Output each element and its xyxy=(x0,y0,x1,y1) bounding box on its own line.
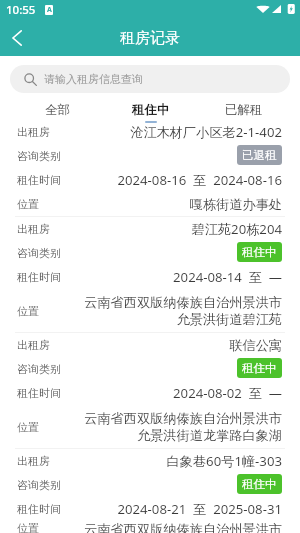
staticText: 出租房 xyxy=(17,125,50,139)
staticText: 10:55 xyxy=(6,2,36,18)
staticText: 咨询类别 xyxy=(17,246,61,260)
staticText: 云南省西双版纳傣族自治州景洪市 xyxy=(84,294,282,311)
staticText: 位置 xyxy=(17,304,39,318)
button[interactable]: 出租房 xyxy=(0,449,300,533)
staticText: 租住中 xyxy=(242,361,277,375)
staticText: 位置 xyxy=(17,197,39,211)
button[interactable]: 出租房 xyxy=(0,217,300,333)
staticText: 已退租 xyxy=(242,148,277,162)
button[interactable]: 已解租 xyxy=(197,101,290,120)
staticText: 咨询类别 xyxy=(17,478,61,492)
staticText: 2024-08-16 至 2024-08-16 xyxy=(117,171,282,189)
staticText: 咨询类别 xyxy=(17,149,61,163)
staticText: 嘎栋街道办事处 xyxy=(189,196,282,213)
staticText: 已解租 xyxy=(225,102,263,118)
staticText: 租住中 xyxy=(132,102,170,118)
staticText: 租住时间 xyxy=(17,270,61,284)
staticText: 全部 xyxy=(45,102,70,118)
staticText: 允景洪街道龙掌路白象湖 xyxy=(136,427,282,444)
staticText: 2024-08-21 至 2025-08-31 xyxy=(117,500,282,518)
staticText: 位置 xyxy=(17,521,39,533)
staticText: 租住中 xyxy=(242,245,277,259)
staticText: 租住中 xyxy=(242,477,277,491)
staticText: 租住时间 xyxy=(17,173,61,187)
staticText: 请输入租房信息查询 xyxy=(44,72,143,86)
staticText: 咨询类别 xyxy=(17,362,61,376)
staticText: 租住时间 xyxy=(17,502,61,516)
button[interactable]: 出租房 xyxy=(0,333,300,449)
button[interactable]: 全部 xyxy=(10,101,104,120)
button[interactable]: Back xyxy=(1,22,33,54)
staticText: 2024-08-02 至 — xyxy=(173,384,282,402)
staticText: 白象巷60号1幢-303 xyxy=(166,452,282,470)
staticText: 沧江木材厂小区老2-1-402 xyxy=(130,123,282,141)
staticText: 2024-08-14 至 — xyxy=(173,268,282,286)
button[interactable]: 出租房 xyxy=(0,120,300,217)
staticText: 出租房 xyxy=(17,338,50,352)
staticText: 出租房 xyxy=(17,222,50,236)
staticText: 位置 xyxy=(17,420,39,434)
staticText: 联信公寓 xyxy=(229,337,282,354)
staticText: 租住时间 xyxy=(17,386,61,400)
staticText: 允景洪街道碧江苑 xyxy=(176,311,282,328)
staticText: 云南省西双版纳傣族自治州景洪市 xyxy=(84,521,282,533)
staticText: 碧江苑20栋204 xyxy=(191,220,282,238)
staticText: A xyxy=(47,5,52,15)
staticText: 出租房 xyxy=(17,454,50,468)
button[interactable]: 请输入租房信息查询 xyxy=(10,65,290,93)
staticText: 云南省西双版纳傣族自治州景洪市 xyxy=(84,410,282,427)
staticText: 租房记录 xyxy=(120,29,180,48)
button[interactable]: 租住中 xyxy=(104,101,197,120)
